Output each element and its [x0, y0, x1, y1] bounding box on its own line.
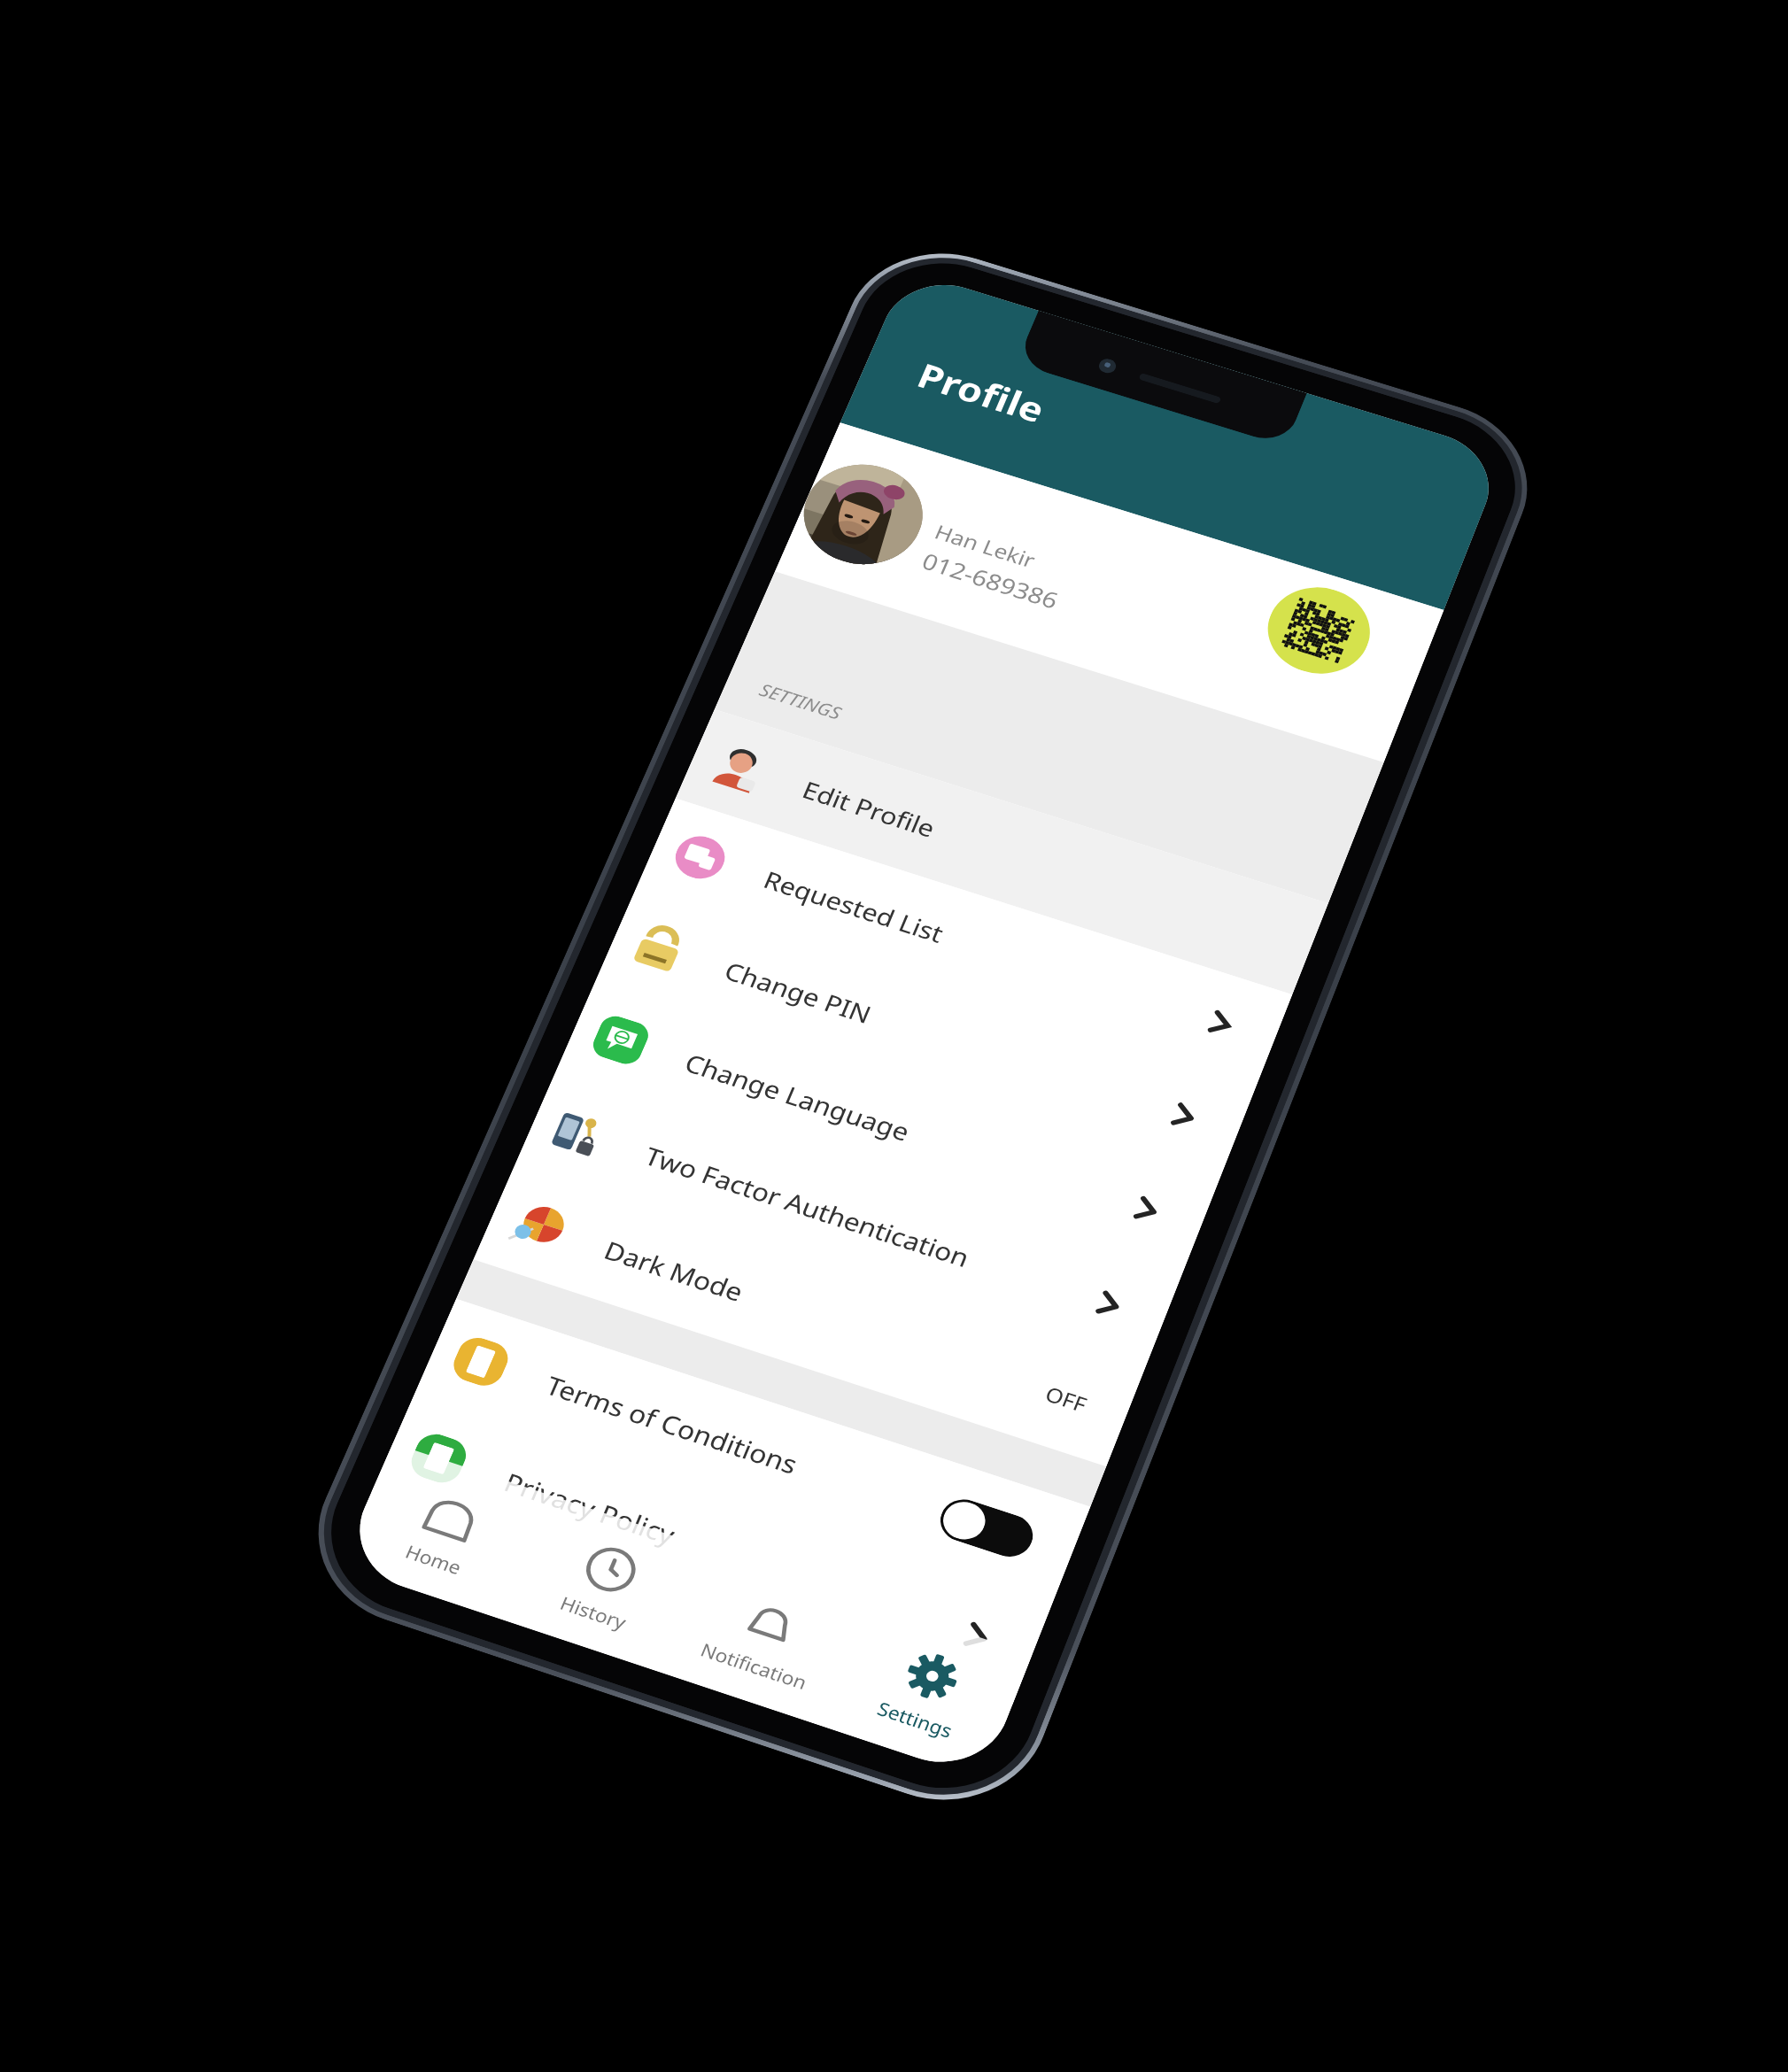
- staticText: Profile: [911, 352, 1052, 433]
- button[interactable]: Privacy Policy: [372, 1395, 1052, 1705]
- staticText: History: [556, 1590, 631, 1634]
- button[interactable]: Two Factor Authentication: [515, 1072, 1182, 1370]
- staticText: Settings: [874, 1695, 956, 1743]
- staticText: Terms of Conditions: [541, 1368, 803, 1482]
- staticText: Two Factor Authentication: [640, 1139, 975, 1274]
- button[interactable]: Terms of Conditions: [414, 1299, 1091, 1605]
- button[interactable]: Show QR code: [1254, 575, 1383, 686]
- button[interactable]: History: [499, 1496, 711, 1672]
- staticText: SETTINGS: [756, 677, 846, 724]
- button[interactable]: Toggle Terms of Conditions: [934, 1493, 1039, 1563]
- staticText: Han Lekir: [931, 518, 1040, 574]
- button[interactable]: Notification: [659, 1548, 871, 1726]
- button[interactable]: Change Language: [556, 980, 1219, 1274]
- staticText: Dark Mode: [599, 1233, 749, 1309]
- staticText: Requested List: [759, 863, 949, 950]
- staticText: Home: [402, 1539, 466, 1580]
- staticText: Notification: [697, 1636, 811, 1695]
- staticText: Change PIN: [720, 954, 876, 1030]
- button[interactable]: Requested List: [636, 798, 1292, 1087]
- button[interactable]: Change PIN: [596, 888, 1256, 1180]
- button[interactable]: Settings: [821, 1601, 1032, 1780]
- staticText: Privacy Policy: [499, 1465, 681, 1552]
- button[interactable]: Han Lekir: [775, 422, 1444, 762]
- button[interactable]: Dark Mode: [473, 1165, 1144, 1467]
- staticText: Change Language: [680, 1046, 915, 1148]
- staticText: Edit Profile: [798, 774, 940, 844]
- button[interactable]: Edit Profile: [675, 709, 1328, 995]
- staticText: 012-689386: [918, 546, 1064, 616]
- button[interactable]: Home: [339, 1443, 551, 1619]
- staticText: OFF: [1042, 1380, 1091, 1418]
